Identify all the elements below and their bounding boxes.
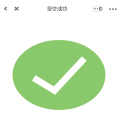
- button[interactable]: Options: [0, 0, 119, 15]
- button[interactable]: Close: [0, 0, 22, 14]
- button[interactable]: Back: [0, 0, 11, 14]
- staticText: 提交成功: [47, 5, 67, 12]
- button[interactable]: More: [0, 0, 102, 16]
